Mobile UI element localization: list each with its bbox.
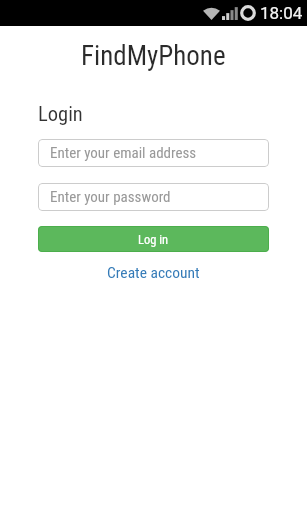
- button[interactable]: Enter your email address: [38, 139, 269, 167]
- button[interactable]: Enter your password: [38, 183, 269, 211]
- staticText: 18:04: [260, 3, 303, 23]
- staticText: FindMyPhone: [81, 40, 226, 72]
- staticText: Enter your password: [50, 188, 171, 206]
- staticText: Login: [38, 102, 83, 126]
- staticText: Log in: [138, 232, 169, 247]
- button[interactable]: Create account: [107, 264, 200, 282]
- staticText: Enter your email address: [50, 144, 197, 162]
- button[interactable]: Log in: [38, 226, 269, 252]
